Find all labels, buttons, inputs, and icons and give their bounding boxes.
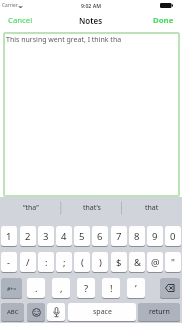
staticText: !	[110, 282, 113, 295]
button[interactable]: @	[147, 252, 163, 272]
button[interactable]: ?	[77, 278, 95, 298]
button[interactable]: 4	[56, 226, 72, 246]
staticText: Cancel	[8, 15, 33, 26]
staticText: 4	[61, 230, 67, 243]
staticText: ABC	[7, 308, 19, 316]
staticText: 0	[170, 230, 176, 243]
staticText: Carrier	[2, 2, 18, 9]
button[interactable]: This nursing went great, I think tha	[3, 32, 180, 197]
staticText: that’s	[83, 203, 101, 213]
staticText: /	[26, 256, 30, 269]
button[interactable]: &	[129, 252, 145, 272]
button[interactable]: that’s	[61, 197, 122, 219]
staticText: :	[45, 256, 48, 269]
button[interactable]: return	[138, 303, 180, 321]
staticText: $	[116, 256, 122, 269]
staticText: return	[149, 307, 170, 317]
button[interactable]: 6	[92, 226, 108, 246]
button[interactable]: ABC	[1, 303, 24, 321]
staticText: @	[151, 256, 160, 269]
staticText: 3	[43, 230, 49, 243]
staticText: Done	[153, 15, 174, 26]
staticText: This nursing went great, I think tha	[6, 35, 122, 45]
button[interactable]: 9	[147, 226, 163, 246]
staticText: &	[134, 256, 141, 269]
button[interactable]: 0	[165, 226, 181, 246]
button[interactable]	[27, 303, 45, 321]
button[interactable]: :	[38, 252, 54, 272]
button[interactable]	[160, 278, 180, 298]
staticText: ?	[84, 282, 89, 295]
button[interactable]: 1	[1, 226, 17, 246]
button[interactable]: 7	[111, 226, 127, 246]
staticText: 2	[25, 230, 31, 243]
button[interactable]: that	[121, 197, 182, 219]
staticText: ’	[135, 282, 137, 295]
button[interactable]: 2	[20, 226, 36, 246]
button[interactable]: !	[102, 278, 120, 298]
button[interactable]: .	[27, 278, 45, 298]
button[interactable]: 5	[74, 226, 90, 246]
button[interactable]: $	[111, 252, 127, 272]
staticText: “tha”	[23, 203, 39, 213]
staticText: Notes	[79, 15, 103, 26]
button[interactable]: "	[165, 252, 181, 272]
staticText: ;	[63, 256, 66, 269]
button[interactable]: )	[92, 252, 108, 272]
button[interactable]: ’	[127, 278, 145, 298]
button[interactable]: 3	[38, 226, 54, 246]
staticText: 9:02 AM	[81, 2, 101, 9]
staticText: 5	[79, 230, 85, 243]
button[interactable]: ,	[52, 278, 70, 298]
staticText: .	[35, 282, 38, 295]
staticText: )	[99, 256, 102, 269]
staticText: ,	[60, 282, 63, 295]
staticText: (	[81, 256, 84, 269]
button[interactable]: Cancel	[8, 15, 33, 26]
button[interactable]: 8	[129, 226, 145, 246]
staticText: 6	[97, 230, 103, 243]
staticText: 9	[152, 230, 158, 243]
staticText: that	[145, 203, 159, 213]
button[interactable]: -	[1, 252, 17, 272]
button[interactable]: ;	[56, 252, 72, 272]
button[interactable]: “tha”	[0, 197, 61, 219]
button[interactable]: Done	[153, 15, 174, 26]
staticText: space	[93, 307, 112, 317]
button[interactable]: #+=	[1, 278, 22, 298]
staticText: #+=	[7, 285, 17, 292]
staticText: 7	[116, 230, 122, 243]
button[interactable]: space	[68, 303, 136, 321]
button[interactable]: /	[20, 252, 36, 272]
staticText: 8	[134, 230, 140, 243]
button[interactable]	[47, 303, 65, 321]
button[interactable]: (	[74, 252, 90, 272]
staticText: "	[171, 256, 175, 269]
staticText: 1	[6, 230, 12, 243]
staticText: -	[7, 256, 11, 269]
